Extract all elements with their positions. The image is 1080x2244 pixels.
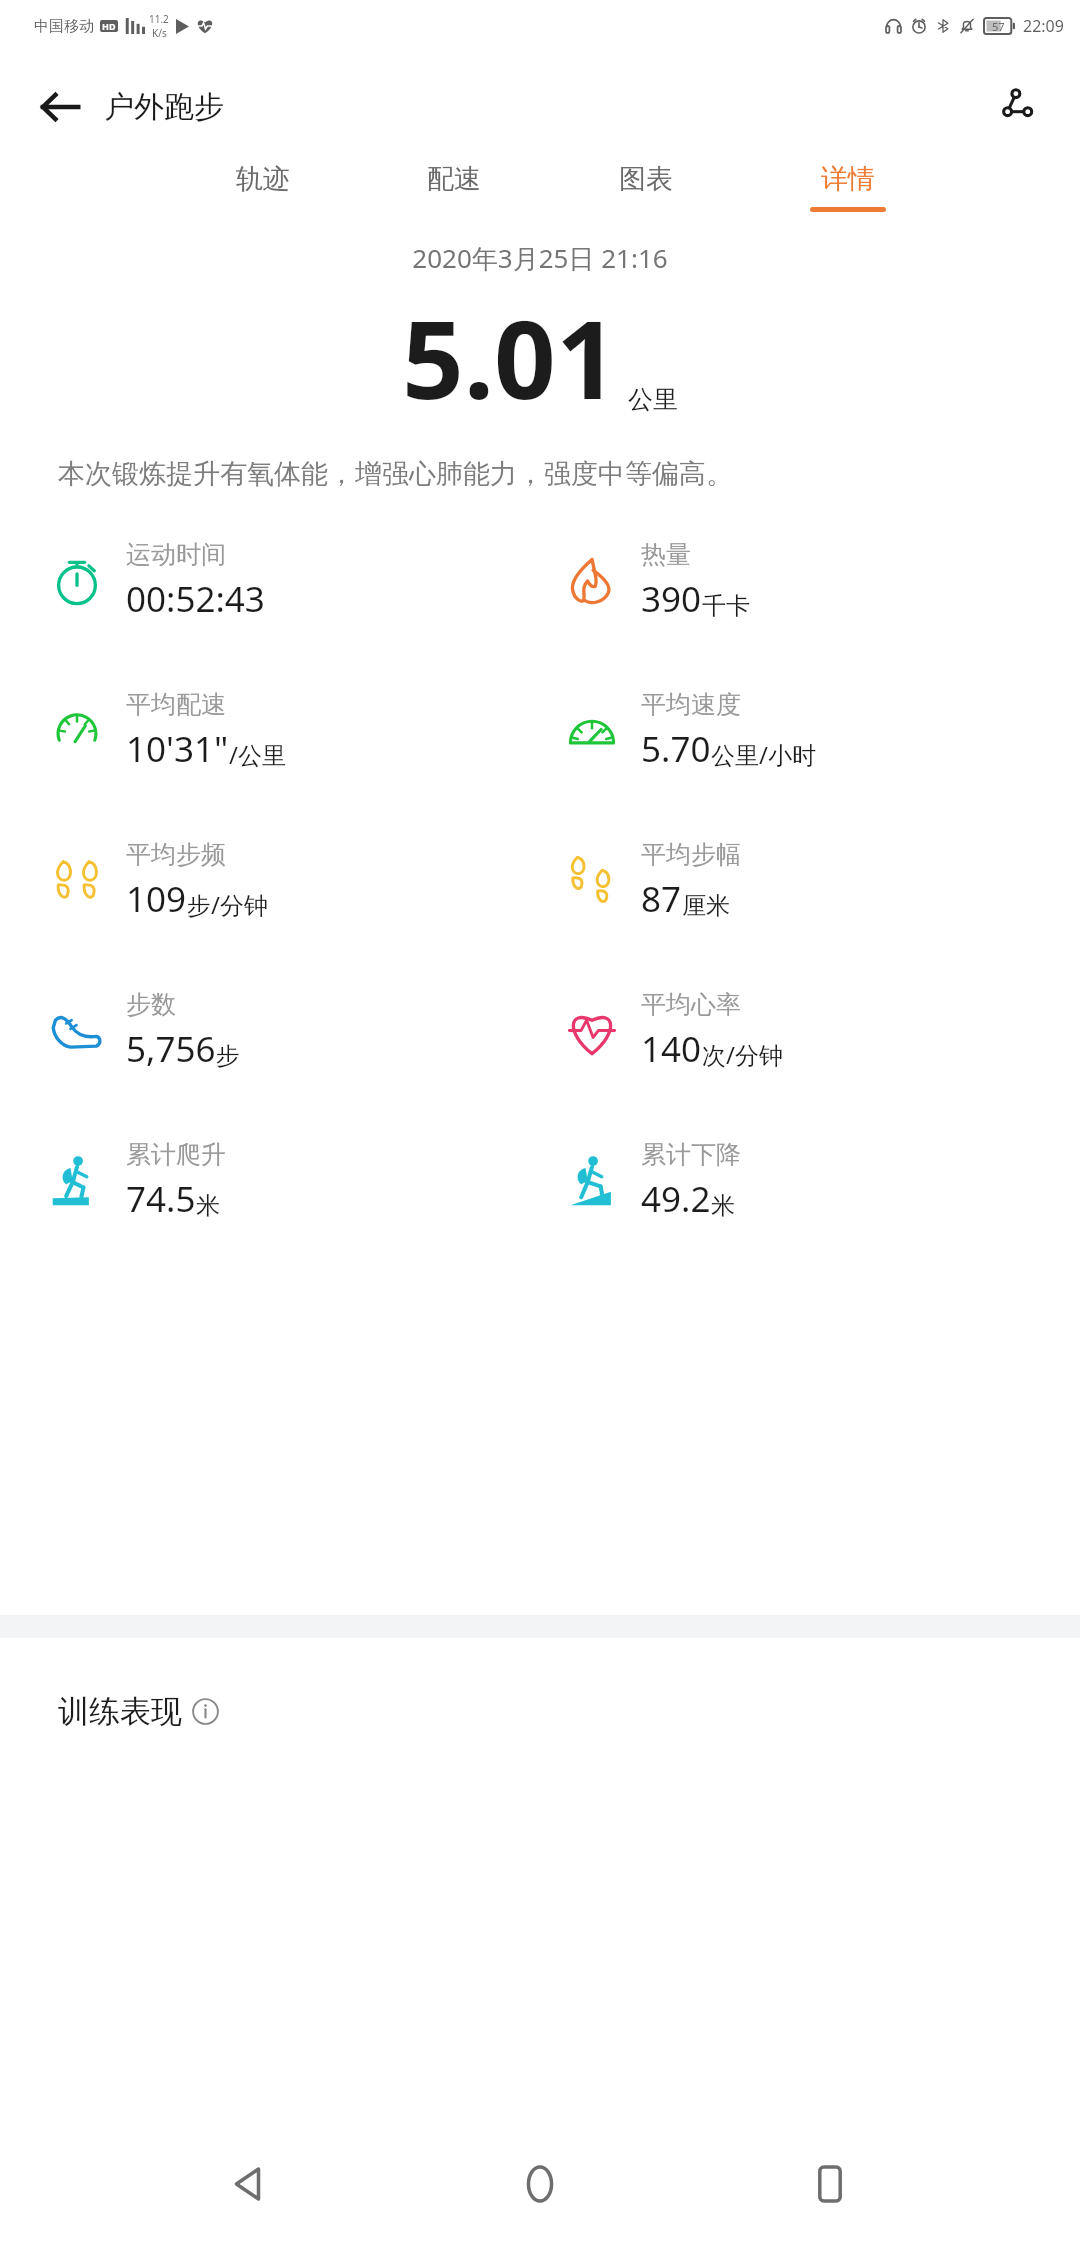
button[interactable]: 运动时间: [50, 539, 565, 623]
button[interactable]: Share: [990, 75, 1054, 139]
staticText: 热量: [641, 539, 691, 570]
staticText: 公里/小时: [711, 738, 816, 771]
button[interactable]: 步数: [50, 989, 565, 1073]
staticText: 步: [216, 1041, 240, 1071]
staticText: 步数: [126, 989, 176, 1020]
staticText: 390: [641, 575, 702, 623]
staticText: 2020年3月25日 21:16: [0, 240, 1080, 276]
button[interactable]: 累计爬升: [50, 1139, 565, 1223]
staticText: 平均配速: [126, 689, 226, 720]
staticText: 累计爬升: [126, 1139, 226, 1170]
button[interactable]: Home: [500, 2144, 580, 2224]
staticText: 运动时间: [126, 539, 226, 570]
staticText: 109: [126, 875, 187, 923]
staticText: 本次锻炼提升有氧体能，增强心肺能力，强度中等偏高。: [58, 457, 1040, 491]
button[interactable]: 详情: [806, 162, 890, 212]
staticText: 平均步频: [126, 839, 226, 870]
staticText: 平均速度: [641, 689, 741, 720]
button[interactable]: 配速: [423, 162, 485, 212]
staticText: 5,756: [126, 1025, 216, 1073]
staticText: 累计下降: [641, 1139, 741, 1170]
staticText: 详情: [821, 162, 875, 196]
button[interactable]: Recents: [790, 2144, 870, 2224]
staticText: 米: [196, 1191, 220, 1221]
staticText: 米: [711, 1191, 735, 1221]
staticText: 74.5: [126, 1175, 196, 1223]
button[interactable]: Back: [210, 2144, 290, 2224]
button[interactable]: 平均配速: [50, 689, 565, 773]
staticText: 千卡: [702, 591, 750, 621]
staticText: K/s: [152, 26, 167, 40]
button[interactable]: 平均步幅: [565, 839, 1080, 923]
staticText: 10'31": [126, 725, 229, 773]
button[interactable]: Back: [28, 75, 92, 139]
staticText: 次/分钟: [702, 1038, 783, 1071]
staticText: 户外跑步: [104, 88, 224, 126]
staticText: 厘米: [682, 891, 730, 921]
button[interactable]: 热量: [565, 539, 1080, 623]
staticText: 训练表现: [58, 1692, 182, 1731]
staticText: 140: [641, 1025, 702, 1073]
staticText: 5.01: [402, 284, 618, 431]
staticText: 22:09: [1023, 15, 1064, 37]
button[interactable]: 训练表现: [58, 1692, 1080, 1731]
staticText: /公里: [229, 738, 286, 771]
staticText: 步/分钟: [187, 888, 268, 921]
button[interactable]: 图表: [615, 162, 677, 212]
staticText: 平均心率: [641, 989, 741, 1020]
button[interactable]: 轨迹: [232, 162, 294, 212]
staticText: 公里: [628, 384, 678, 415]
staticText: 图表: [619, 162, 673, 196]
button[interactable]: 平均心率: [565, 989, 1080, 1073]
staticText: 00:52:43: [126, 575, 265, 623]
staticText: 轨迹: [236, 162, 290, 196]
staticText: HD: [102, 20, 116, 32]
staticText: 87: [641, 875, 682, 923]
staticText: 49.2: [641, 1175, 711, 1223]
staticText: 57: [992, 19, 1005, 34]
staticText: 11.2: [149, 12, 169, 26]
staticText: 中国移动: [34, 17, 94, 36]
staticText: 平均步幅: [641, 839, 741, 870]
button[interactable]: 平均步频: [50, 839, 565, 923]
staticText: 5.70: [641, 725, 711, 773]
staticText: 配速: [427, 162, 481, 196]
button[interactable]: 平均速度: [565, 689, 1080, 773]
button[interactable]: 累计下降: [565, 1139, 1080, 1223]
